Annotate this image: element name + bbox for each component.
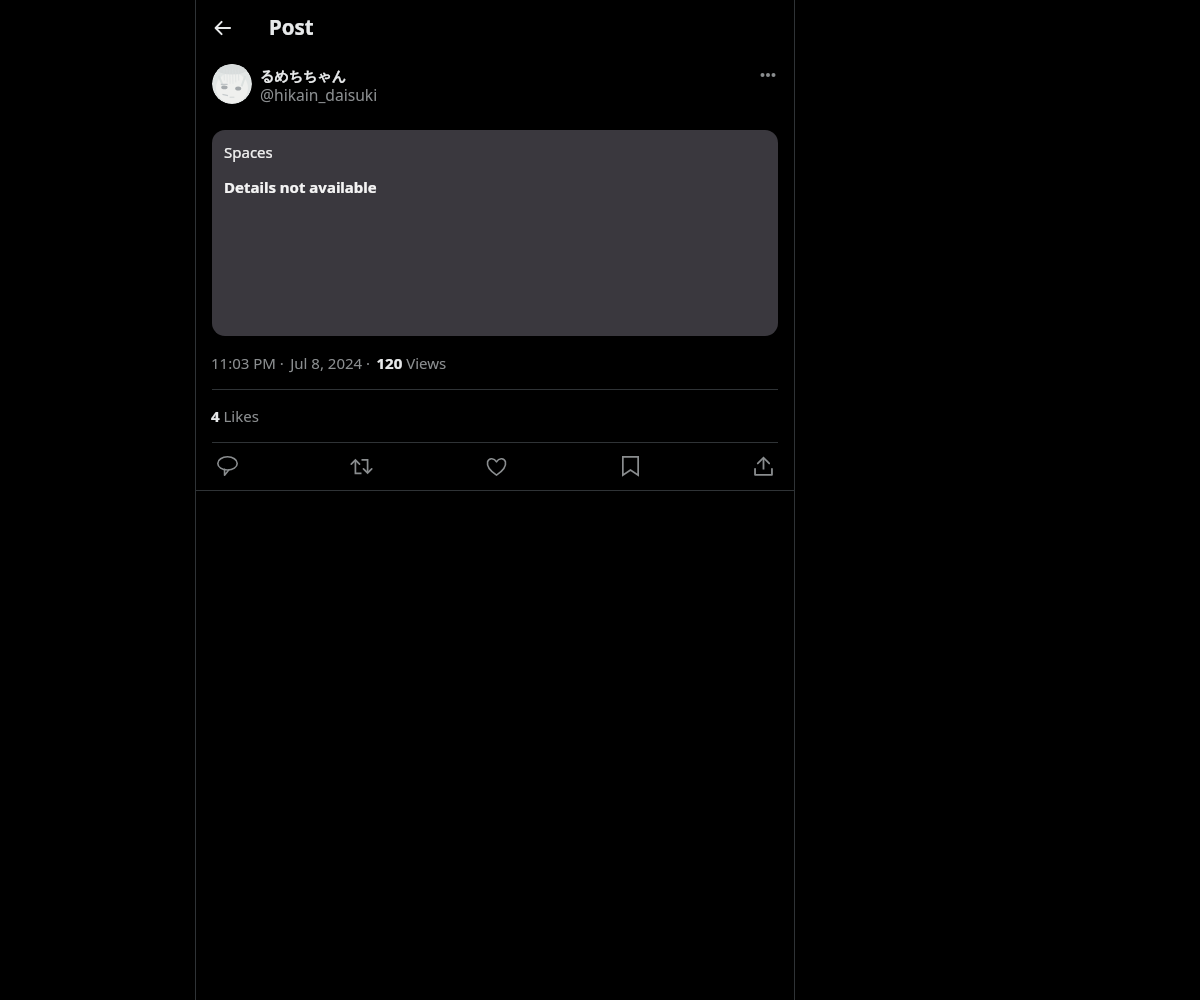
button[interactable]: Like bbox=[479, 449, 513, 483]
staticText: 11:03 PM · Jul 8, 2024 · 120 Views bbox=[211, 353, 447, 373]
button[interactable]: Bookmark bbox=[613, 449, 647, 483]
staticText: るめちちゃん bbox=[260, 68, 346, 86]
staticText: 4 Likes bbox=[211, 406, 259, 426]
button[interactable]: Spaces bbox=[212, 130, 778, 336]
button[interactable]: Back bbox=[206, 11, 239, 44]
button[interactable]: Repost bbox=[344, 449, 378, 483]
button[interactable]: Share bbox=[746, 449, 780, 483]
button[interactable]: More options bbox=[752, 59, 784, 91]
staticText: Spaces bbox=[224, 142, 273, 162]
staticText: @hikain_daisuki bbox=[260, 84, 378, 105]
button[interactable]: 4 Likes bbox=[211, 403, 259, 429]
button[interactable]: Profile picture bbox=[212, 64, 252, 104]
staticText: Details not available bbox=[224, 177, 377, 197]
button[interactable]: Reply bbox=[210, 449, 244, 483]
staticText: Post bbox=[269, 13, 314, 41]
